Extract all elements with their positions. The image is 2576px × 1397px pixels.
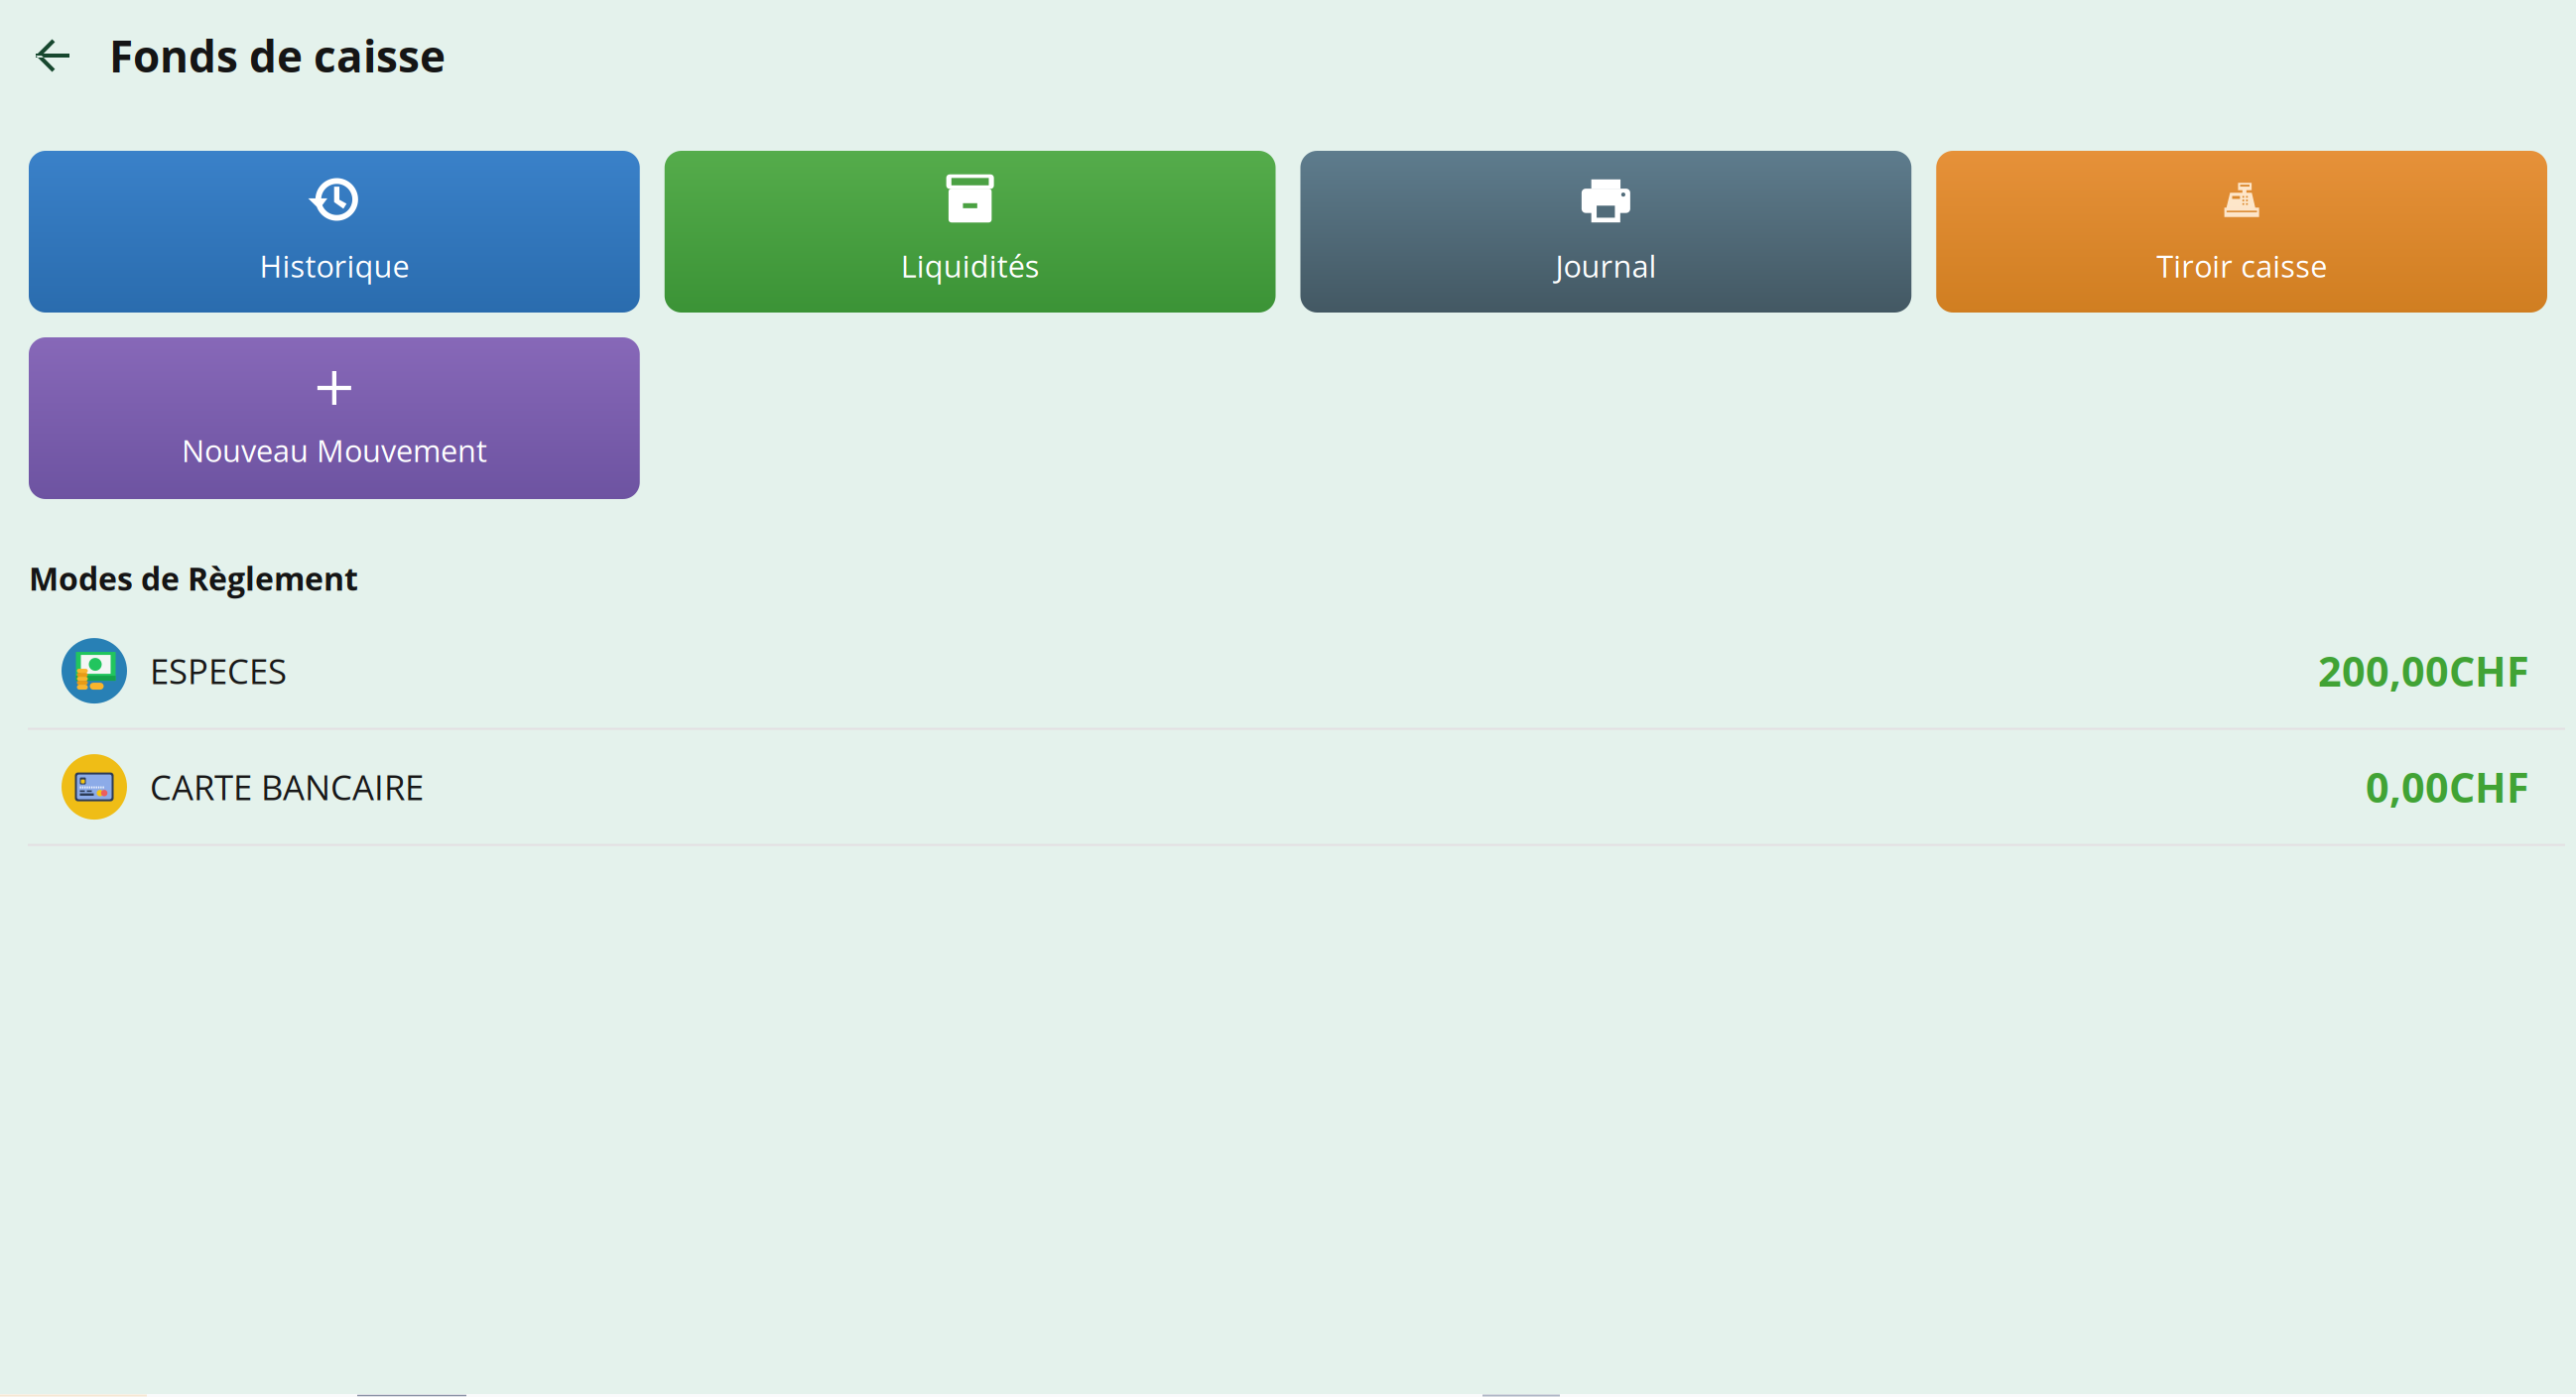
staticText: 200,00CHF [2318,643,2529,699]
staticText: ESPECES [150,647,287,694]
button[interactable]: Journal [1300,151,1911,313]
button[interactable]: Liquidités [665,151,1276,313]
button[interactable]: Historique [29,151,640,313]
staticText: Modes de Règlement [29,557,358,600]
staticText: Journal [1555,245,1657,287]
staticText: Tiroir caisse [2156,245,2327,287]
staticText: Nouveau Mouvement [181,430,487,471]
button[interactable]: Nouveau Mouvement [29,337,640,499]
staticText: Liquidités [901,245,1040,287]
staticText: Historique [259,245,409,287]
staticText: 0,00CHF [2366,759,2529,815]
button[interactable]: Tiroir caisse [1936,151,2547,313]
staticText: Fonds de caisse [109,26,446,85]
button[interactable]: ESPECES [0,614,2576,730]
button[interactable]: CARTE BANCAIRE [0,730,2576,846]
button[interactable]: Back [0,14,97,97]
staticText: CARTE BANCAIRE [150,763,424,810]
